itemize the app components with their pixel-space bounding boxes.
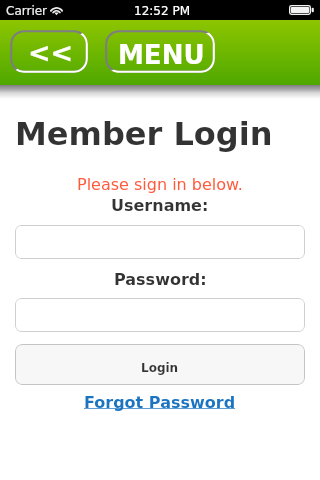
staticText: Login: [141, 361, 179, 375]
staticText: <<: [28, 37, 74, 68]
staticText: Password:: [114, 270, 207, 289]
button[interactable]: Back: [10, 30, 88, 73]
button[interactable]: MENU: [105, 30, 215, 73]
staticText: Forgot Password: [84, 393, 236, 412]
staticText: MENU: [118, 40, 205, 70]
button[interactable]: [15, 298, 305, 332]
staticText: Please sign in below.: [77, 175, 243, 194]
staticText: Carrier: [6, 4, 48, 18]
button[interactable]: [15, 225, 305, 259]
button[interactable]: Login: [15, 344, 305, 385]
button[interactable]: Forgot Password: [84, 393, 236, 412]
staticText: Member Login: [15, 115, 273, 152]
staticText: 12:52 PM: [134, 4, 190, 18]
staticText: Username:: [111, 196, 209, 215]
